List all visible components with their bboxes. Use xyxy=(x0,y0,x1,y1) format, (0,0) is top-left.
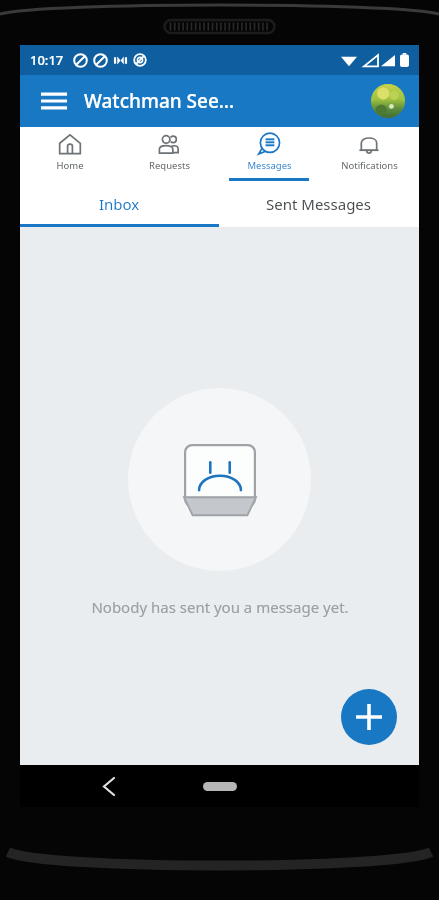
button[interactable]: Notifications xyxy=(319,127,419,181)
staticText: Watchman See… xyxy=(84,88,235,114)
button[interactable]: Home xyxy=(20,127,119,181)
button[interactable]: Messages xyxy=(219,127,319,181)
button[interactable]: Requests xyxy=(119,127,219,181)
button[interactable]: Back xyxy=(92,769,126,803)
staticText: Inbox xyxy=(99,194,140,214)
button[interactable]: Inbox xyxy=(20,181,219,227)
button[interactable]: Sent Messages xyxy=(219,181,419,227)
staticText: 10:17 xyxy=(30,51,64,69)
staticText: Requests xyxy=(149,159,190,172)
staticText: Messages xyxy=(247,159,292,172)
staticText: Nobody has sent you a message yet. xyxy=(91,597,349,617)
button[interactable]: Home xyxy=(190,773,250,799)
button[interactable]: Profile xyxy=(371,84,405,118)
staticText: Notifications xyxy=(341,159,398,172)
staticText: Sent Messages xyxy=(266,194,372,214)
button[interactable]: New message xyxy=(341,689,397,745)
staticText: Home xyxy=(56,159,84,172)
button[interactable]: Open navigation menu xyxy=(32,79,76,123)
